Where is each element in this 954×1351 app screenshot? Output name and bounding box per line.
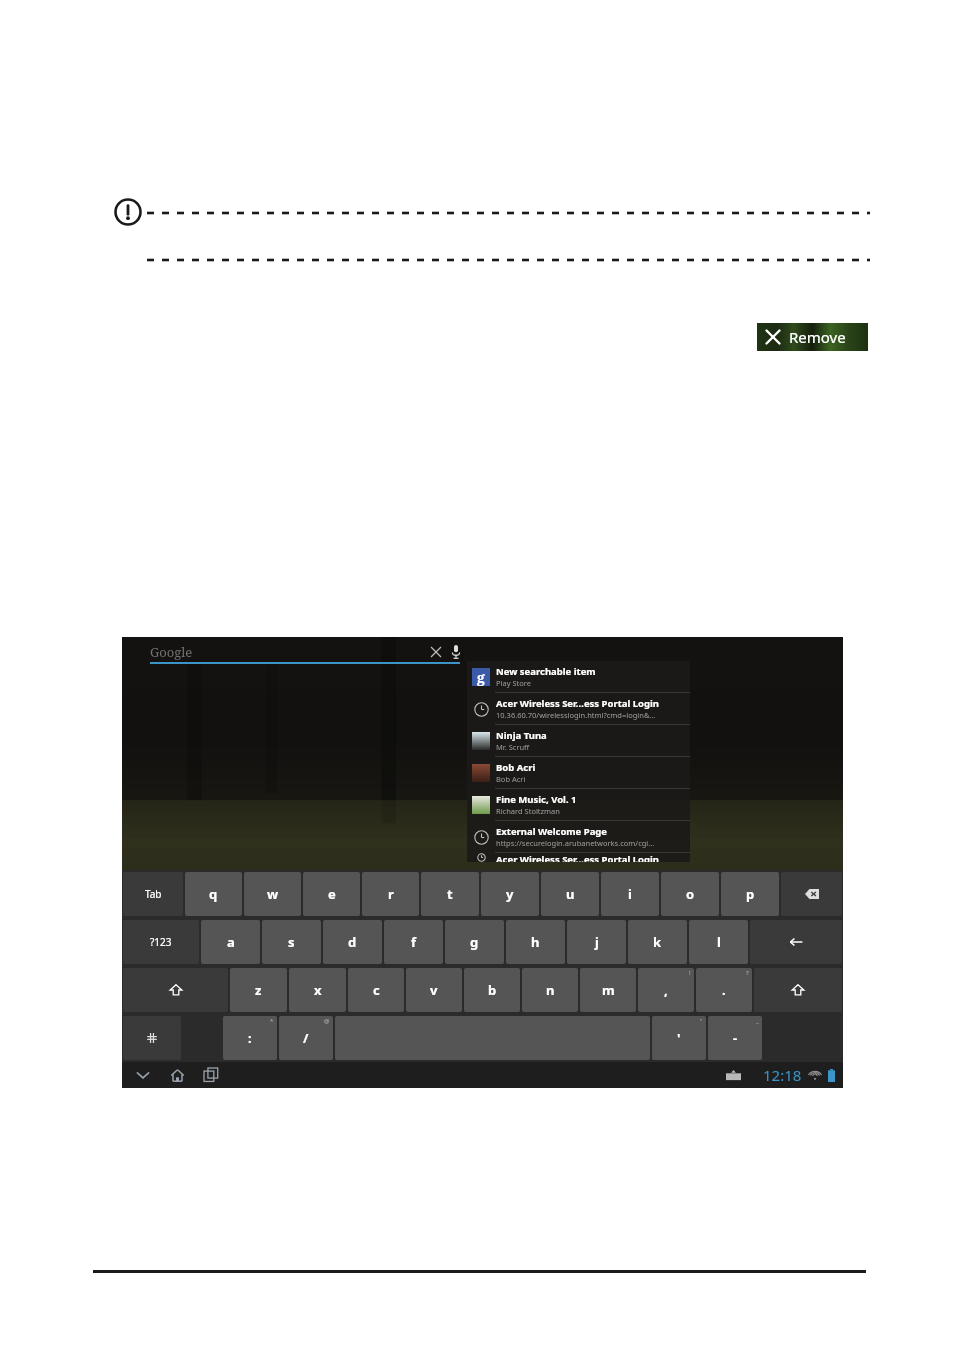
staticText: q bbox=[209, 885, 218, 903]
button[interactable]: External Welcome Page bbox=[467, 821, 690, 852]
staticText: Acer Wireless Ser…ess Portal Login bbox=[496, 853, 660, 862]
button[interactable]: o bbox=[661, 872, 719, 916]
button[interactable]: b bbox=[464, 968, 520, 1012]
button[interactable]: Home bbox=[164, 1062, 190, 1088]
staticText: u bbox=[566, 885, 575, 903]
staticText: Richard Stoltzman bbox=[496, 806, 560, 816]
button[interactable]: . bbox=[696, 968, 752, 1012]
staticText: e bbox=[328, 885, 336, 903]
button[interactable]: p bbox=[721, 872, 779, 916]
staticText: o bbox=[686, 885, 695, 903]
button[interactable]: v bbox=[406, 968, 462, 1012]
other: Battery bbox=[828, 1069, 835, 1082]
staticText: Play Store bbox=[496, 678, 531, 688]
staticText: , bbox=[664, 981, 668, 999]
staticText: h bbox=[531, 933, 540, 951]
staticText: z bbox=[255, 981, 262, 999]
staticText: Mr. Scruff bbox=[496, 742, 530, 752]
button[interactable]: q bbox=[185, 872, 242, 916]
staticText: Google bbox=[150, 643, 430, 661]
staticText: https://securelogin.arubanetworks.com/cg… bbox=[496, 838, 655, 848]
button[interactable]: shift bbox=[754, 968, 842, 1012]
staticText: * bbox=[270, 1017, 274, 1025]
button[interactable]: enter bbox=[750, 920, 842, 964]
button[interactable]: Bob Acri bbox=[467, 757, 690, 788]
button[interactable]: m bbox=[580, 968, 636, 1012]
staticText: Bob Acri bbox=[496, 774, 526, 784]
button[interactable]: f bbox=[384, 920, 443, 964]
staticText: 10.36.60.70/wirelesslogin.html?cmd=login… bbox=[496, 710, 656, 720]
button[interactable]: : bbox=[223, 1016, 277, 1060]
staticText: i bbox=[628, 885, 632, 903]
button[interactable]: g bbox=[445, 920, 504, 964]
button[interactable]: - bbox=[708, 1016, 762, 1060]
staticText: : bbox=[248, 1029, 252, 1047]
button[interactable]: , bbox=[638, 968, 694, 1012]
button[interactable]: j bbox=[567, 920, 626, 964]
button[interactable]: Google bbox=[150, 639, 465, 665]
staticText: b bbox=[488, 981, 497, 999]
staticText: External Welcome Page bbox=[496, 825, 608, 838]
button[interactable]: Recent apps bbox=[198, 1062, 224, 1088]
staticText: x bbox=[314, 981, 322, 999]
button[interactable]: z bbox=[230, 968, 287, 1012]
button[interactable]: Hide keyboard bbox=[130, 1062, 156, 1088]
staticText: ! bbox=[689, 969, 691, 977]
staticText: . bbox=[722, 981, 726, 999]
staticText: s bbox=[288, 933, 295, 951]
staticText: t bbox=[447, 885, 453, 903]
staticText: Ninja Tuna bbox=[496, 729, 547, 742]
staticText: y bbox=[506, 885, 514, 903]
button[interactable]: Ninja Tuna bbox=[467, 725, 690, 756]
staticText: a bbox=[227, 933, 235, 951]
button[interactable]: shift bbox=[123, 968, 228, 1012]
button[interactable]: u bbox=[541, 872, 599, 916]
staticText: Remove bbox=[789, 327, 846, 347]
button[interactable]: a bbox=[201, 920, 260, 964]
button[interactable]: w bbox=[244, 872, 301, 916]
button[interactable]: Acer Wireless Ser…ess Portal Login bbox=[467, 853, 690, 862]
button[interactable]: ' bbox=[652, 1016, 706, 1060]
button[interactable]: Acer Wireless Ser…ess Portal Login bbox=[467, 693, 690, 724]
button[interactable]: Remove bbox=[757, 323, 868, 351]
button[interactable]: y bbox=[481, 872, 539, 916]
staticText: r bbox=[388, 885, 394, 903]
button[interactable]: n bbox=[522, 968, 578, 1012]
other: Clear bbox=[430, 646, 442, 658]
other: Voice search bbox=[451, 645, 461, 659]
staticText: " bbox=[700, 1017, 703, 1025]
button[interactable]: c bbox=[348, 968, 404, 1012]
button[interactable]: back bbox=[781, 872, 842, 916]
staticText: Acer Wireless Ser…ess Portal Login bbox=[496, 697, 660, 710]
staticText: / bbox=[303, 1029, 309, 1047]
button[interactable]: / bbox=[279, 1016, 333, 1060]
button[interactable]: l bbox=[689, 920, 748, 964]
staticText: Fine Music, Vol. 1 bbox=[496, 793, 577, 806]
button[interactable]: s bbox=[262, 920, 321, 964]
button[interactable]: i bbox=[601, 872, 659, 916]
button[interactable]: e bbox=[303, 872, 360, 916]
staticText: j bbox=[595, 933, 599, 951]
staticText: f bbox=[411, 933, 417, 951]
button[interactable]: globe bbox=[123, 1016, 181, 1060]
staticText: g bbox=[477, 668, 485, 686]
button[interactable]: Fine Music, Vol. 1 bbox=[467, 789, 690, 820]
other: Keyboard bbox=[726, 1070, 741, 1081]
button[interactable]: r bbox=[362, 872, 419, 916]
button[interactable]: Tab bbox=[123, 872, 183, 916]
staticText: l bbox=[717, 933, 721, 951]
button[interactable]: k bbox=[628, 920, 687, 964]
button[interactable]: t bbox=[421, 872, 479, 916]
staticText: Bob Acri bbox=[496, 761, 536, 774]
staticText: m bbox=[602, 981, 615, 999]
button[interactable]: d bbox=[323, 920, 382, 964]
button[interactable]: x bbox=[289, 968, 346, 1012]
staticText: @ bbox=[324, 1017, 330, 1025]
button[interactable]: g bbox=[467, 661, 690, 692]
staticText: w bbox=[267, 885, 279, 903]
button[interactable]: ?123 bbox=[123, 920, 199, 964]
other: Wi-Fi bbox=[808, 1070, 822, 1081]
other: Remove bbox=[763, 327, 783, 347]
button[interactable]: h bbox=[506, 920, 565, 964]
